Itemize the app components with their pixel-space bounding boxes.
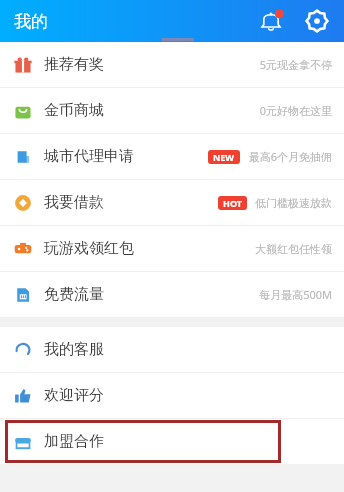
staticText: 金币商城 [44, 101, 104, 120]
button[interactable]: 金币商城 [0, 88, 344, 133]
button[interactable]: 我要借款 [0, 180, 344, 225]
staticText: 最高6个月免抽佣 [248, 149, 332, 164]
staticText: 我的 [14, 11, 48, 32]
button[interactable]: 推荐有奖 [0, 42, 344, 87]
button[interactable]: 欢迎评分 [0, 373, 344, 418]
button[interactable]: Settings [304, 8, 330, 34]
staticText: 欢迎评分 [44, 386, 104, 405]
staticText: 每月最高500M [259, 287, 332, 302]
staticText: 低门槛极速放款 [255, 196, 332, 210]
button[interactable]: 城市代理申请 [0, 134, 344, 179]
staticText: 玩游戏领红包 [44, 239, 134, 258]
staticText: HOT [223, 197, 242, 209]
button[interactable]: Notifications [256, 6, 286, 36]
button[interactable]: 加盟合作 [0, 419, 344, 464]
staticText: 我的客服 [44, 340, 104, 359]
staticText: 0元好物在这里 [259, 103, 332, 118]
staticText: 加盟合作 [44, 432, 104, 451]
staticText: 我要借款 [44, 193, 104, 212]
staticText: 城市代理申请 [44, 147, 134, 166]
button[interactable]: 我的客服 [0, 327, 344, 372]
staticText: 免费流量 [44, 285, 104, 304]
staticText: 推荐有奖 [44, 55, 104, 74]
staticText: 5元现金拿不停 [259, 57, 332, 72]
button[interactable]: 免费流量 [0, 272, 344, 317]
staticText: 大额红包任性领 [255, 242, 332, 256]
button[interactable]: 玩游戏领红包 [0, 226, 344, 271]
staticText: NEW [213, 151, 235, 163]
